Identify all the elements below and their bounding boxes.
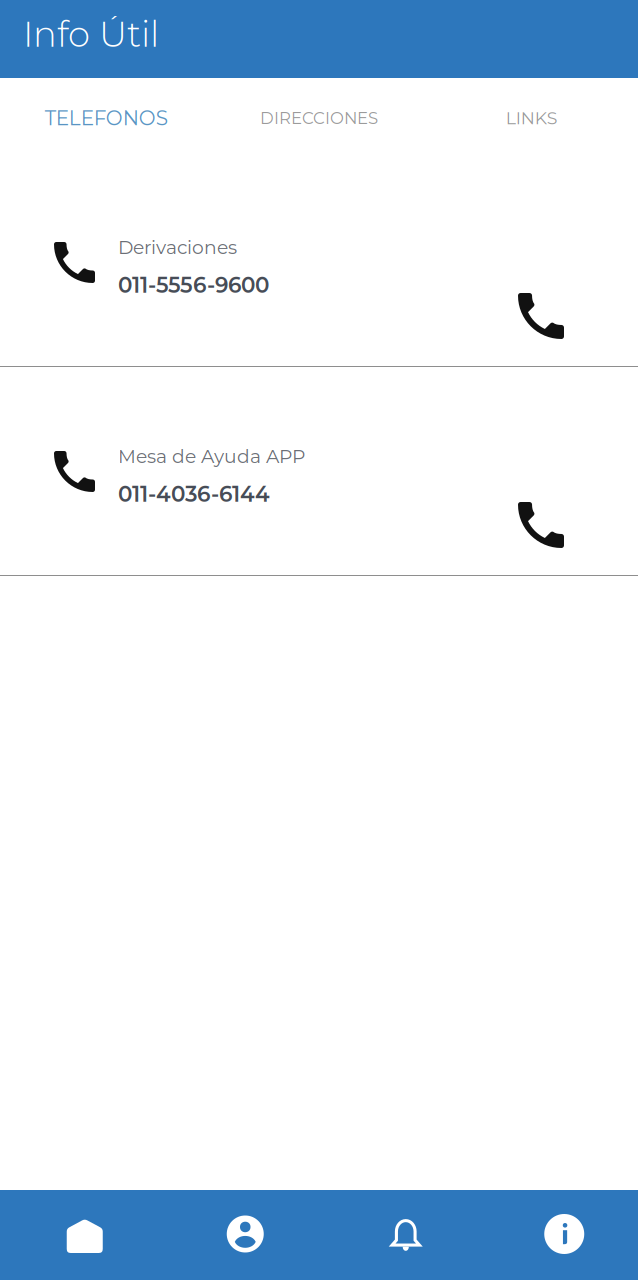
staticText: 011-5556-9600: [118, 272, 269, 298]
staticText: Mesa de Ayuda APP: [118, 445, 305, 468]
staticText: Info Útil: [23, 12, 159, 56]
button[interactable]: LINKS: [425, 78, 638, 158]
button[interactable]: Inicio: [0, 1190, 159, 1280]
button[interactable]: DIRECCIONES: [213, 78, 425, 158]
button[interactable]: Perfil: [159, 1190, 319, 1280]
staticText: LINKS: [506, 107, 558, 128]
staticText: DIRECCIONES: [260, 108, 378, 128]
button[interactable]: Notificaciones: [319, 1190, 478, 1280]
button[interactable]: Llamar 011-4036-6144: [504, 494, 578, 556]
staticText: 011-4036-6144: [118, 481, 270, 507]
button[interactable]: Info: [478, 1190, 638, 1280]
button[interactable]: Llamar 011-5556-9600: [504, 285, 578, 347]
staticText: Derivaciones: [118, 236, 237, 259]
staticText: TELEFONOS: [45, 106, 168, 130]
button[interactable]: TELEFONOS: [0, 78, 213, 158]
